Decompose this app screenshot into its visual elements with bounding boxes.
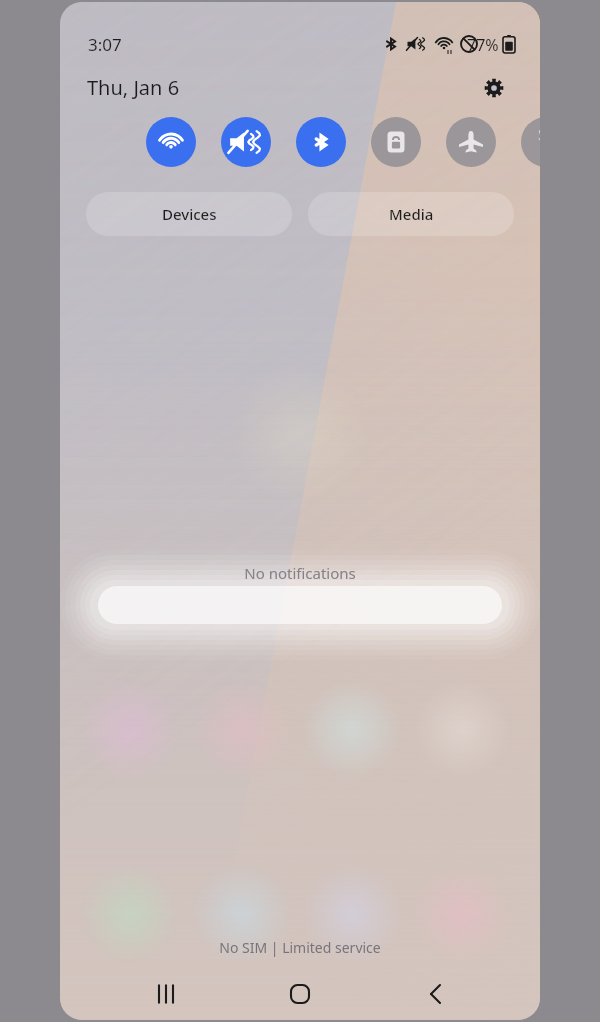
button[interactable]: Wi-Fi [146, 117, 196, 167]
button[interactable]: Screen lock [371, 117, 421, 167]
button[interactable]: Home [272, 968, 328, 1020]
staticText: 77% [467, 34, 499, 56]
button[interactable]: Media [308, 192, 514, 236]
button[interactable]: Recent apps [138, 968, 194, 1020]
staticText: Media [389, 204, 434, 224]
staticText: Devices [162, 204, 217, 224]
staticText: No notifications [60, 563, 540, 583]
staticText: No SIM | Limited service [60, 938, 540, 957]
staticText: Thu, Jan 6 [87, 74, 180, 101]
button[interactable]: Settings [472, 66, 516, 110]
staticText: 3:07 [88, 33, 122, 56]
button[interactable]: Flashlight [521, 117, 540, 167]
button[interactable]: Bluetooth [296, 117, 346, 167]
button[interactable]: Devices [86, 192, 292, 236]
button[interactable]: Flight mode [446, 117, 496, 167]
button[interactable]: Sound off [221, 117, 271, 167]
button[interactable]: Back [406, 968, 462, 1020]
